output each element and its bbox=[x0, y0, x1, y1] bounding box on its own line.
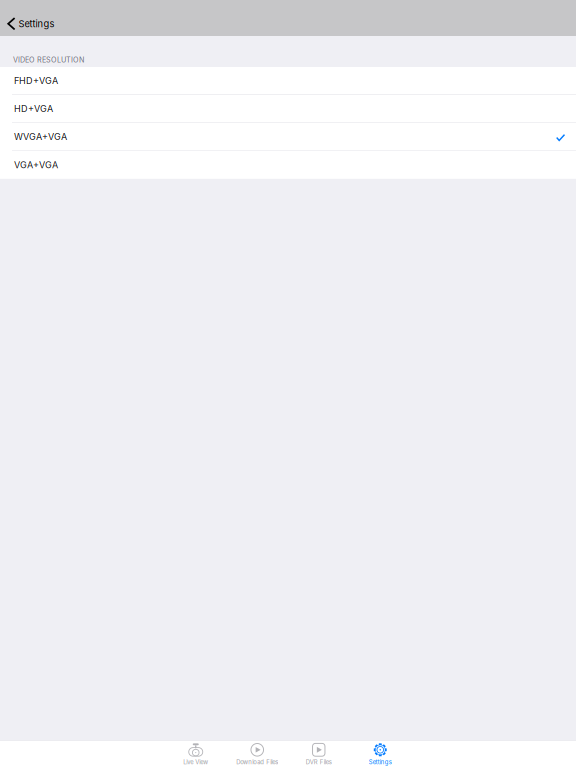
button[interactable]: FHD+VGA bbox=[0, 67, 576, 95]
staticText: WVGA+VGA bbox=[14, 131, 67, 142]
button[interactable]: Settings bbox=[349, 741, 411, 768]
staticText: Live View bbox=[183, 758, 208, 766]
staticText: DVR Files bbox=[306, 758, 332, 766]
button[interactable]: VGA+VGA bbox=[0, 151, 576, 179]
button[interactable]: Settings bbox=[0, 0, 63, 36]
button[interactable]: WVGA+VGA bbox=[0, 123, 576, 151]
staticText: Download Files bbox=[236, 758, 278, 766]
staticText: Settings bbox=[369, 758, 392, 766]
staticText: HD+VGA bbox=[14, 103, 53, 114]
staticText: VIDEO RESOLUTION bbox=[13, 56, 84, 64]
staticText: FHD+VGA bbox=[14, 75, 58, 86]
button[interactable]: Download Files bbox=[226, 741, 288, 768]
staticText: Settings bbox=[19, 18, 55, 29]
button[interactable]: Live View bbox=[165, 741, 226, 768]
staticText: VGA+VGA bbox=[14, 159, 58, 170]
button[interactable]: HD+VGA bbox=[0, 95, 576, 123]
button[interactable]: DVR Files bbox=[288, 741, 349, 768]
